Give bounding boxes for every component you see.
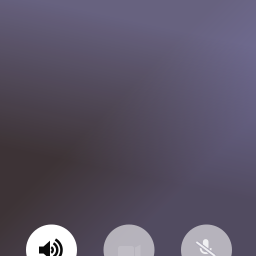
button[interactable]: Speaker on bbox=[26, 224, 77, 256]
button[interactable]: Turn camera off bbox=[103, 224, 154, 256]
button[interactable]: Unmute microphone bbox=[181, 224, 232, 256]
